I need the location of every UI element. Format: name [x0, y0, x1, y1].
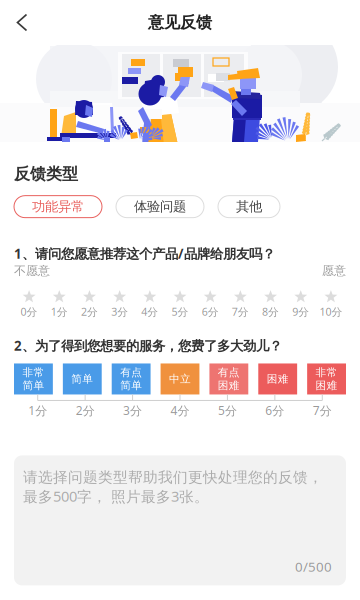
button[interactable]: 有点 简单 — [112, 363, 151, 394]
button[interactable]: 简单 — [63, 363, 102, 394]
staticText: 6分 — [265, 402, 284, 418]
button[interactable]: 评分1分 — [44, 290, 74, 319]
button[interactable]: 评分2分 — [74, 290, 105, 319]
button[interactable]: 其他 — [218, 196, 280, 218]
staticText: 非常 困难 — [316, 366, 338, 392]
staticText: 意见反馈 — [148, 13, 212, 32]
staticText: 非常 简单 — [22, 366, 44, 392]
button[interactable]: 返回 — [0, 0, 44, 44]
staticText: 愿意 — [322, 263, 346, 278]
staticText: 请选择问题类型帮助我们更快处理您的反馈，最多500字， 照片最多3张。 — [23, 468, 323, 506]
staticText: 简单 — [71, 372, 93, 385]
button[interactable]: 评分3分 — [104, 290, 135, 319]
staticText: 7分 — [313, 402, 332, 418]
staticText: 7分 — [232, 305, 249, 319]
button[interactable]: 中立 — [161, 363, 199, 394]
staticText: 体验问题 — [134, 198, 186, 215]
staticText: 2分 — [81, 305, 98, 319]
staticText: 4分 — [170, 402, 189, 418]
staticText: 2、为了得到您想要的服务，您费了多大劲儿？ — [14, 337, 282, 354]
button[interactable]: 评分8分 — [255, 290, 286, 319]
button[interactable]: 评分0分 — [14, 290, 44, 319]
staticText: 3分 — [111, 305, 128, 319]
button[interactable]: 评分6分 — [195, 290, 225, 319]
staticText: 3分 — [123, 402, 142, 418]
staticText: 中立 — [169, 372, 191, 385]
button[interactable]: 非常 简单 — [14, 363, 53, 394]
staticText: 6分 — [202, 305, 219, 319]
staticText: 2分 — [76, 402, 95, 418]
button[interactable]: 评分7分 — [225, 290, 255, 319]
staticText: 有点 困难 — [218, 366, 240, 392]
staticText: 反馈类型 — [14, 164, 78, 184]
staticText: 0分 — [21, 305, 38, 319]
staticText: 5分 — [218, 402, 237, 418]
button[interactable]: 功能异常 — [14, 196, 102, 218]
staticText: 1分 — [28, 402, 47, 418]
button[interactable]: 评分9分 — [286, 290, 316, 319]
staticText: 功能异常 — [32, 198, 84, 215]
button[interactable]: 有点 困难 — [209, 363, 248, 394]
staticText: 10分 — [319, 305, 342, 319]
staticText: 不愿意 — [14, 263, 50, 278]
staticText: 8分 — [262, 305, 279, 319]
staticText: 1、请问您愿意推荐这个产品/品牌给朋友吗？ — [14, 245, 275, 262]
button[interactable]: 困难 — [258, 363, 297, 394]
staticText: 9分 — [292, 305, 309, 319]
button[interactable]: 非常 困难 — [307, 363, 346, 394]
staticText: 困难 — [267, 372, 289, 385]
staticText: 4分 — [141, 305, 158, 319]
button[interactable]: 评分5分 — [165, 290, 195, 319]
button[interactable]: 评分4分 — [135, 290, 165, 319]
button[interactable]: 评分10分 — [316, 290, 346, 319]
staticText: 其他 — [236, 198, 262, 215]
staticText: 1分 — [51, 305, 68, 319]
staticText: 5分 — [171, 305, 188, 319]
staticText: 有点 简单 — [120, 366, 142, 392]
staticText: 0/500 — [295, 558, 332, 575]
button[interactable]: 体验问题 — [116, 196, 204, 218]
